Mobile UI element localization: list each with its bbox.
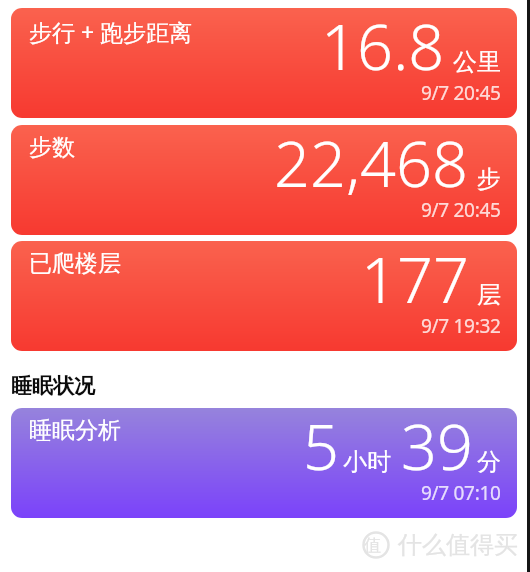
staticText: 步 — [477, 164, 501, 194]
staticText: 177 — [361, 241, 469, 322]
staticText: 值 — [364, 535, 381, 556]
staticText: 小时 — [343, 447, 391, 477]
staticText: 睡眠状况 — [11, 373, 95, 399]
staticText: 步行 + 跑步距离 — [29, 16, 193, 47]
staticText: 什么值得买 — [398, 530, 518, 560]
button[interactable]: 睡眠分析 — [11, 408, 517, 518]
staticText: 22,468 — [274, 125, 469, 206]
staticText: 层 — [477, 280, 501, 310]
staticText: 睡眠分析 — [29, 416, 121, 445]
staticText: 16.8 — [321, 8, 445, 89]
staticText: 已爬楼层 — [29, 249, 121, 278]
staticText: 9/7 20:45 — [421, 197, 501, 223]
staticText: 分 — [477, 447, 501, 477]
staticText: 39 — [401, 408, 473, 489]
button[interactable]: 步行 + 跑步距离 — [11, 8, 517, 118]
button[interactable]: 步数 — [11, 125, 517, 235]
staticText: 5 — [303, 408, 339, 489]
staticText: 公里 — [453, 47, 501, 77]
button[interactable]: 已爬楼层 — [11, 241, 517, 351]
staticText: 9/7 20:45 — [421, 80, 501, 106]
staticText: 9/7 19:32 — [421, 313, 501, 339]
staticText: 步数 — [29, 133, 75, 162]
staticText: 9/7 07:10 — [421, 480, 501, 506]
